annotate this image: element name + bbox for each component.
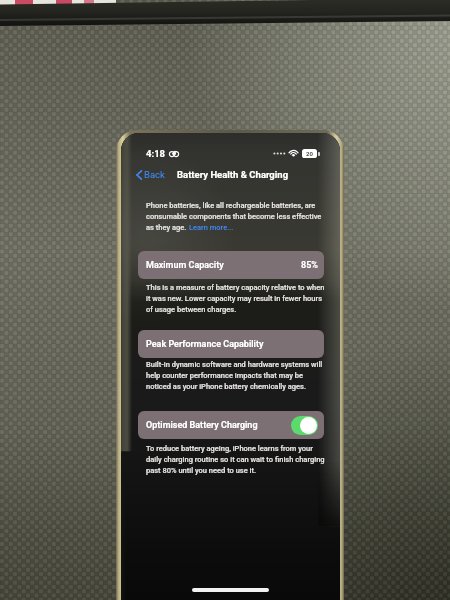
button[interactable]: Optimised Battery Charging toggle	[291, 416, 318, 435]
staticText: it was new. Lower capacity may result in…	[146, 294, 323, 303]
staticText: Phone batteries, like all rechargeable b…	[146, 201, 316, 210]
staticText: Maximum Capacity	[146, 260, 224, 271]
staticText: Built-in dynamic software and hardware s…	[146, 360, 323, 369]
button[interactable]: Learn more...	[189, 223, 234, 232]
staticText: help counter performance impacts that ma…	[146, 371, 303, 380]
staticText: past 80% until you need to use it.	[146, 466, 257, 475]
staticText: noticed as your iPhone battery chemicall…	[146, 382, 307, 391]
button[interactable]: Back	[134, 168, 167, 181]
staticText: 4:18	[146, 148, 166, 159]
staticText: Battery Health & Charging	[177, 169, 289, 180]
staticText: consumable components that become less e…	[146, 212, 322, 221]
staticText: daily charging routine so it can wait to…	[146, 455, 325, 464]
button[interactable]: Peak Performance Capability	[138, 330, 324, 358]
staticText: Back	[144, 169, 165, 180]
staticText: 20	[306, 150, 313, 157]
staticText: This is a measure of battery capacity re…	[146, 283, 325, 292]
button[interactable]: Optimised Battery Charging	[138, 411, 324, 439]
staticText: 85%	[301, 260, 318, 271]
staticText: Optimised Battery Charging	[146, 420, 258, 431]
staticText: To reduce battery ageing, iPhone learns …	[146, 444, 313, 453]
staticText: Peak Performance Capability	[146, 339, 264, 350]
button[interactable]: Maximum Capacity	[138, 251, 324, 279]
staticText: of usage between charges.	[146, 305, 237, 314]
staticText: as they age.	[146, 223, 187, 232]
